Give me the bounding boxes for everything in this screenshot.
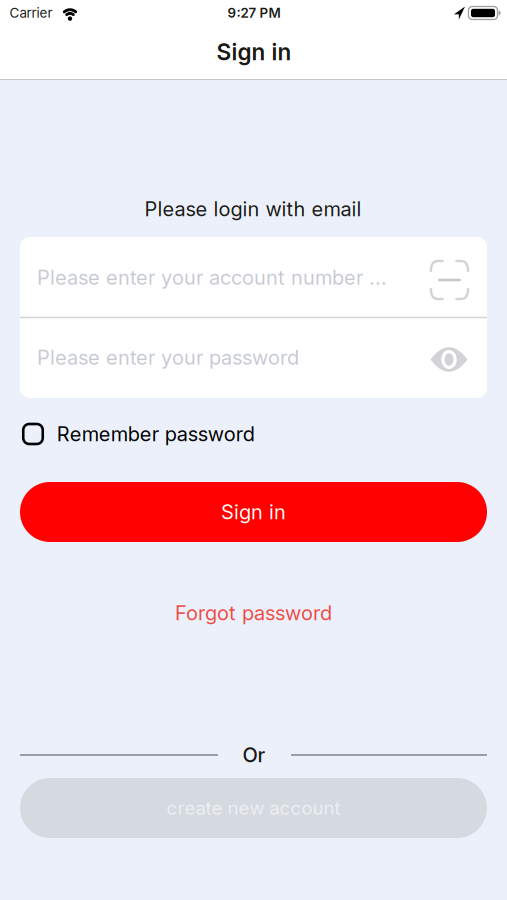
staticText: Forgot password xyxy=(175,601,332,625)
staticText: Please login with email xyxy=(144,197,361,221)
button[interactable]: Forgot password xyxy=(175,601,332,625)
button[interactable]: Please enter your password xyxy=(20,317,487,397)
staticText: Remember password xyxy=(57,422,255,446)
button[interactable]: Scan account number xyxy=(431,261,468,299)
staticText: 9:27 PM xyxy=(227,5,280,21)
button[interactable]: Show password xyxy=(430,348,467,370)
button[interactable]: Please enter your account number ... xyxy=(20,237,487,317)
staticText: Sign in xyxy=(221,500,286,524)
staticText: Please enter your password xyxy=(37,346,299,369)
staticText: Sign in xyxy=(216,39,291,65)
button[interactable]: create new account xyxy=(20,778,487,838)
button[interactable]: Sign in xyxy=(20,482,487,542)
staticText: Or xyxy=(242,743,265,767)
staticText: Please enter your account number ... xyxy=(37,266,387,289)
staticText: Carrier xyxy=(9,5,52,21)
button[interactable]: Remember password xyxy=(23,422,255,446)
staticText: create new account xyxy=(166,797,340,819)
